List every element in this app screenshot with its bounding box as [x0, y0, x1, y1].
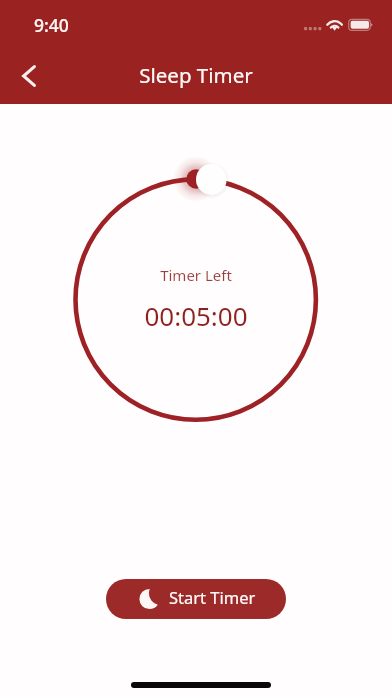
- staticText: 9:40: [34, 13, 69, 37]
- button[interactable]: Back: [6, 53, 51, 98]
- button[interactable]: Timer duration handle: [195, 163, 227, 195]
- button[interactable]: Start Timer: [106, 579, 286, 619]
- staticText: Sleep Timer: [0, 61, 392, 89]
- staticText: Start Timer: [169, 586, 256, 608]
- staticText: Timer Left: [0, 265, 392, 285]
- staticText: 00:05:00: [0, 298, 392, 333]
